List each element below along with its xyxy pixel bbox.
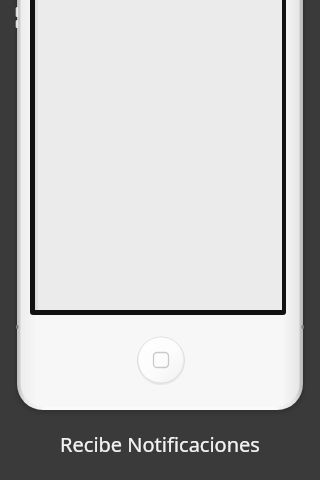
staticText: Recibe Notificaciones [60,431,260,458]
button[interactable]: Recibe Notificaciones [40,428,280,460]
button[interactable]: Home [138,337,184,383]
